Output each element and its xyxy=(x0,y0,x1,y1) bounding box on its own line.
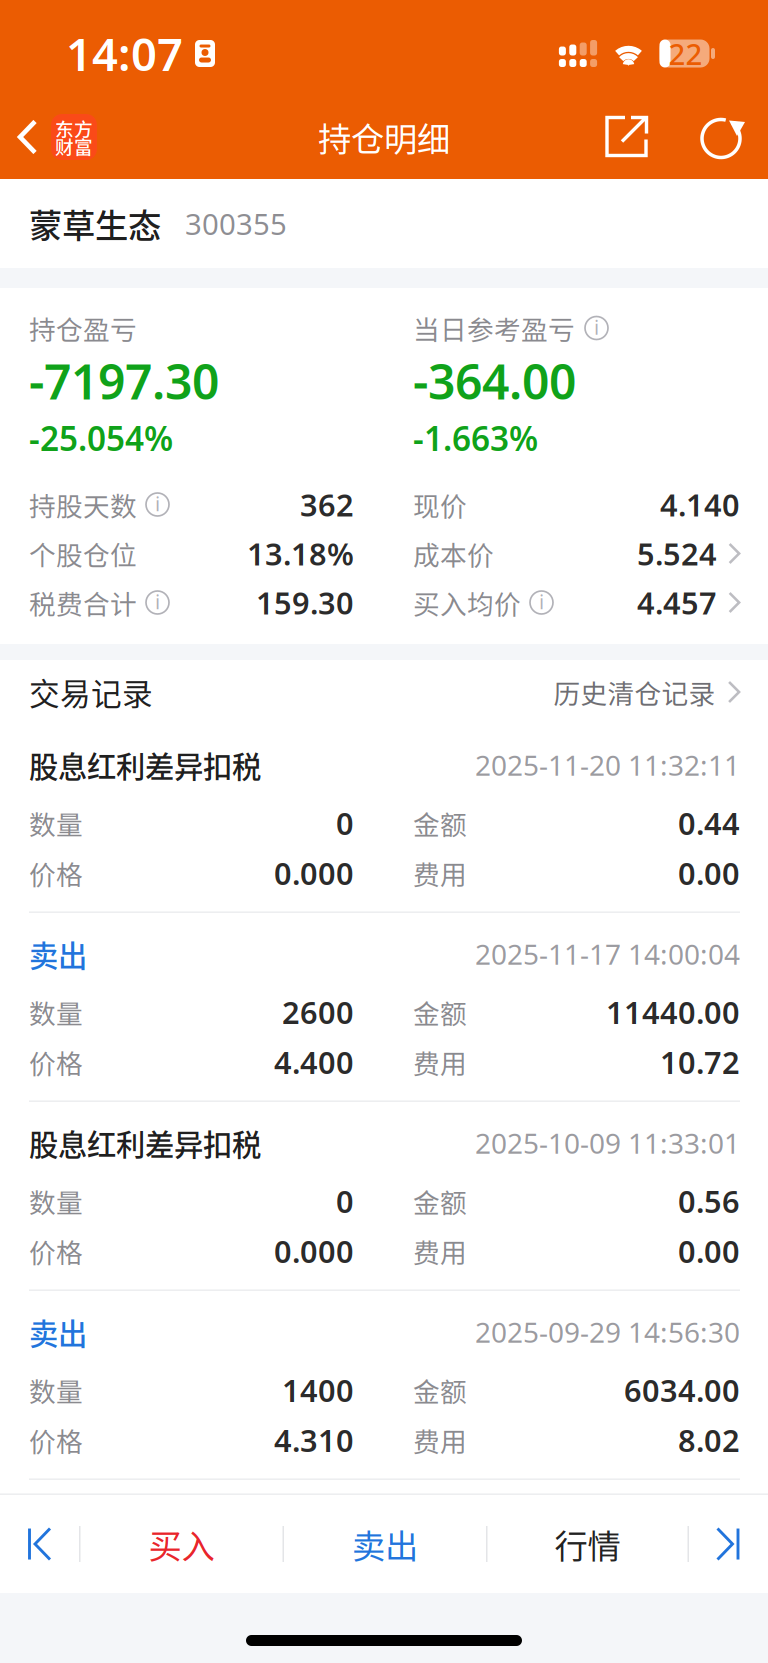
staticText: 价格 xyxy=(29,1232,83,1270)
staticText: 159.30 xyxy=(256,582,354,623)
staticText: 数量 xyxy=(29,1182,83,1220)
staticText: 成本价 xyxy=(413,534,494,573)
staticText: i xyxy=(155,490,160,517)
staticText: 价格 xyxy=(29,1043,83,1081)
staticText: 卖出 xyxy=(352,1520,418,1568)
staticText: 10.72 xyxy=(660,1042,740,1082)
staticText: 行情 xyxy=(554,1520,620,1568)
staticText: 现价 xyxy=(413,485,467,524)
staticText: 8.02 xyxy=(678,1420,740,1460)
staticText: 东 xyxy=(55,114,74,141)
button[interactable]: 卖出 xyxy=(284,1495,486,1593)
staticText: 2025-11-17 14:00:04 xyxy=(475,935,740,973)
staticText: 13.18% xyxy=(247,533,354,574)
staticText: 5.524 xyxy=(637,533,717,574)
staticText: 价格 xyxy=(29,854,83,892)
staticText: 22 xyxy=(668,34,702,73)
staticText: 0.000 xyxy=(274,853,354,893)
staticText: 持股天数 xyxy=(29,485,137,524)
staticText: 300355 xyxy=(185,204,287,243)
staticText: 价格 xyxy=(29,1421,83,1459)
staticText: i xyxy=(594,314,599,340)
staticText: 2600 xyxy=(282,992,354,1032)
staticText: 数量 xyxy=(29,993,83,1031)
staticText: -25.054% xyxy=(29,416,173,460)
staticText: 2025-09-29 14:56:30 xyxy=(475,1313,740,1351)
staticText: 4.457 xyxy=(637,582,717,623)
staticText: 0 xyxy=(336,1181,354,1221)
button[interactable]: 买入 xyxy=(80,1495,282,1593)
staticText: 11440.00 xyxy=(606,992,740,1032)
staticText: i xyxy=(155,588,160,615)
staticText: 0 xyxy=(336,803,354,843)
staticText: 2025-10-09 11:33:01 xyxy=(475,1124,740,1162)
button[interactable]: 历史清仓记录 xyxy=(554,673,740,711)
staticText: 数量 xyxy=(29,1371,83,1409)
button[interactable]: Next xyxy=(689,1495,767,1593)
staticText: 2025-11-20 11:32:11 xyxy=(475,746,740,784)
staticText: 当日参考盈亏 xyxy=(413,309,575,347)
staticText: 费用 xyxy=(413,1043,467,1081)
button[interactable]: Back xyxy=(0,95,105,179)
staticText: 交易记录 xyxy=(29,670,153,714)
staticText: 股息红利差异扣税 xyxy=(29,1122,261,1164)
button[interactable]: Share xyxy=(597,95,657,179)
staticText: 方 xyxy=(74,114,93,141)
staticText: -1.663% xyxy=(413,416,538,460)
staticText: 0.44 xyxy=(678,803,740,843)
staticText: i xyxy=(539,588,544,615)
staticText: 数量 xyxy=(29,804,83,842)
staticText: 蒙草生态 xyxy=(29,199,161,248)
staticText: 362 xyxy=(300,484,354,525)
staticText: 持仓明细 xyxy=(318,113,450,161)
staticText: 0.00 xyxy=(678,853,740,893)
staticText: 买入均价 xyxy=(413,583,521,622)
staticText: 1400 xyxy=(282,1370,354,1410)
staticText: 金额 xyxy=(413,804,467,842)
staticText: 持仓盈亏 xyxy=(29,309,137,347)
staticText: 0.000 xyxy=(274,1231,354,1271)
staticText: 卖出 xyxy=(29,933,87,975)
staticText: 4.140 xyxy=(660,484,740,525)
staticText: 税费合计 xyxy=(29,583,137,622)
staticText: 个股仓位 xyxy=(29,534,137,573)
staticText: 金额 xyxy=(413,1371,467,1409)
staticText: 14:07 xyxy=(66,23,183,84)
staticText: 6034.00 xyxy=(624,1370,740,1410)
staticText: 0.00 xyxy=(678,1231,740,1271)
staticText: 卖出 xyxy=(29,1311,87,1353)
button[interactable]: 行情 xyxy=(487,1495,687,1593)
staticText: 财 xyxy=(55,132,74,159)
staticText: 买入 xyxy=(148,1520,214,1568)
staticText: 富 xyxy=(74,132,93,159)
staticText: 4.310 xyxy=(274,1420,354,1460)
staticText: 4.400 xyxy=(274,1042,354,1082)
staticText: 0.56 xyxy=(678,1181,740,1221)
staticText: 费用 xyxy=(413,1232,467,1270)
staticText: -364.00 xyxy=(413,349,576,413)
staticText: 费用 xyxy=(413,1421,467,1459)
staticText: 费用 xyxy=(413,854,467,892)
staticText: 股息红利差异扣税 xyxy=(29,744,261,786)
staticText: -7197.30 xyxy=(29,349,219,413)
staticText: 金额 xyxy=(413,993,467,1031)
button[interactable]: Previous xyxy=(1,1495,79,1593)
staticText: 历史清仓记录 xyxy=(554,673,716,711)
button[interactable]: Refresh xyxy=(693,95,753,179)
staticText: 金额 xyxy=(413,1182,467,1220)
